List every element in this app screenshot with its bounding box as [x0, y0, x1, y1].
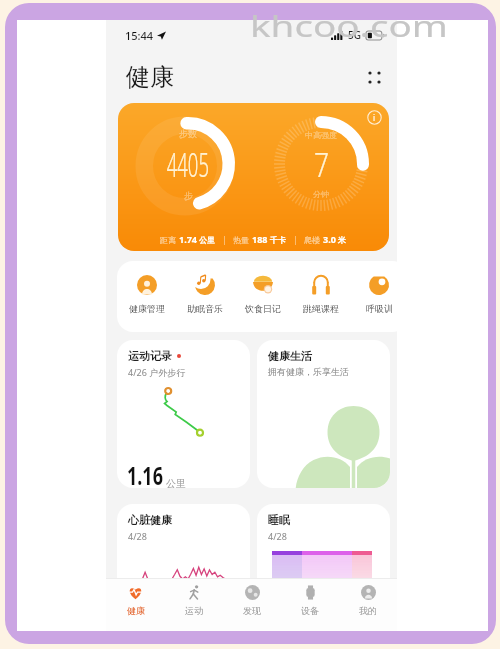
staticText: 运动记录	[128, 349, 172, 363]
staticText: 跳绳课程	[303, 303, 339, 314]
staticText: 呼吸训	[366, 303, 393, 314]
button[interactable]: 助眠音乐	[176, 261, 234, 332]
staticText: 公里	[197, 234, 216, 245]
button[interactable]: 步数	[118, 103, 389, 251]
button[interactable]: 设备	[281, 585, 339, 631]
staticText: 步	[184, 190, 193, 201]
button[interactable]: 健康	[106, 585, 165, 631]
button[interactable]: 运动	[165, 585, 223, 631]
button[interactable]: 跳绳课程	[292, 261, 350, 332]
staticText: 拥有健康，乐享生活	[268, 366, 349, 377]
staticText: 健康生活	[268, 349, 312, 363]
staticText: 心脏健康	[128, 513, 172, 527]
staticText: 公里	[166, 477, 186, 488]
button[interactable]: More options	[362, 65, 386, 89]
staticText: 爬楼	[304, 234, 323, 245]
staticText: khcoo.com	[250, 6, 448, 45]
staticText: 助眠音乐	[187, 303, 223, 314]
button[interactable]: 睡眠	[257, 504, 390, 624]
staticText: 7	[314, 142, 329, 187]
staticText: 中高强度	[305, 130, 337, 140]
staticText: 4/26 户外步行	[128, 366, 186, 378]
staticText: 健康管理	[129, 303, 165, 314]
button[interactable]: 健康生活	[257, 340, 390, 488]
staticText: 我的	[359, 605, 377, 616]
staticText: 4405	[167, 142, 209, 187]
staticText: |	[287, 234, 304, 245]
staticText: 健康	[126, 62, 174, 92]
staticText: 健康	[127, 605, 145, 616]
button[interactable]: 发现	[223, 585, 281, 631]
staticText: 千卡	[268, 234, 287, 245]
staticText: 1.74	[179, 233, 197, 245]
button[interactable]: 呼吸训	[350, 261, 408, 332]
staticText: 饮食日记	[245, 303, 281, 314]
button[interactable]: Info	[367, 110, 382, 125]
staticText: 发现	[243, 605, 261, 616]
staticText: 5G	[348, 28, 361, 42]
button[interactable]: 我的	[339, 585, 397, 631]
button[interactable]: 心脏健康	[117, 504, 250, 624]
staticText: 热量	[233, 234, 252, 245]
staticText: 15:44	[125, 28, 154, 43]
staticText: 步数	[179, 128, 197, 139]
staticText: 距离	[160, 234, 179, 245]
button[interactable]: 运动记录	[117, 340, 250, 488]
staticText: 运动	[185, 605, 203, 616]
staticText: 188	[252, 233, 268, 245]
staticText: i	[373, 112, 376, 123]
button[interactable]: 饮食日记	[234, 261, 292, 332]
staticText: 4/28	[268, 530, 287, 542]
staticText: 分钟	[313, 189, 329, 199]
staticText: 3.0	[323, 233, 336, 245]
staticText: 设备	[301, 605, 319, 616]
staticText: 米	[336, 234, 347, 245]
staticText: 1.16	[127, 458, 163, 488]
staticText: |	[216, 234, 233, 245]
staticText: 睡眠	[268, 513, 290, 527]
staticText: 4/28	[128, 530, 147, 542]
button[interactable]: 健康管理	[117, 261, 176, 332]
